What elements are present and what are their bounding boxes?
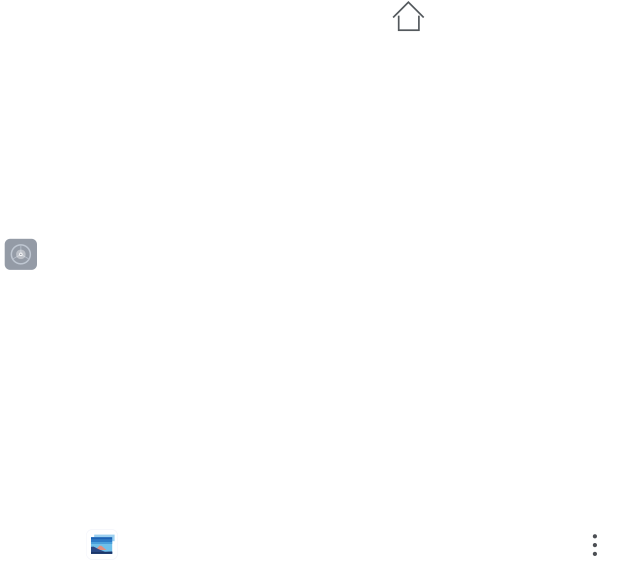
button[interactable]: Photos — [86, 529, 118, 560]
button[interactable]: Home — [392, 0, 424, 32]
button[interactable]: Settings — [5, 239, 37, 270]
button[interactable]: More options — [593, 534, 597, 556]
